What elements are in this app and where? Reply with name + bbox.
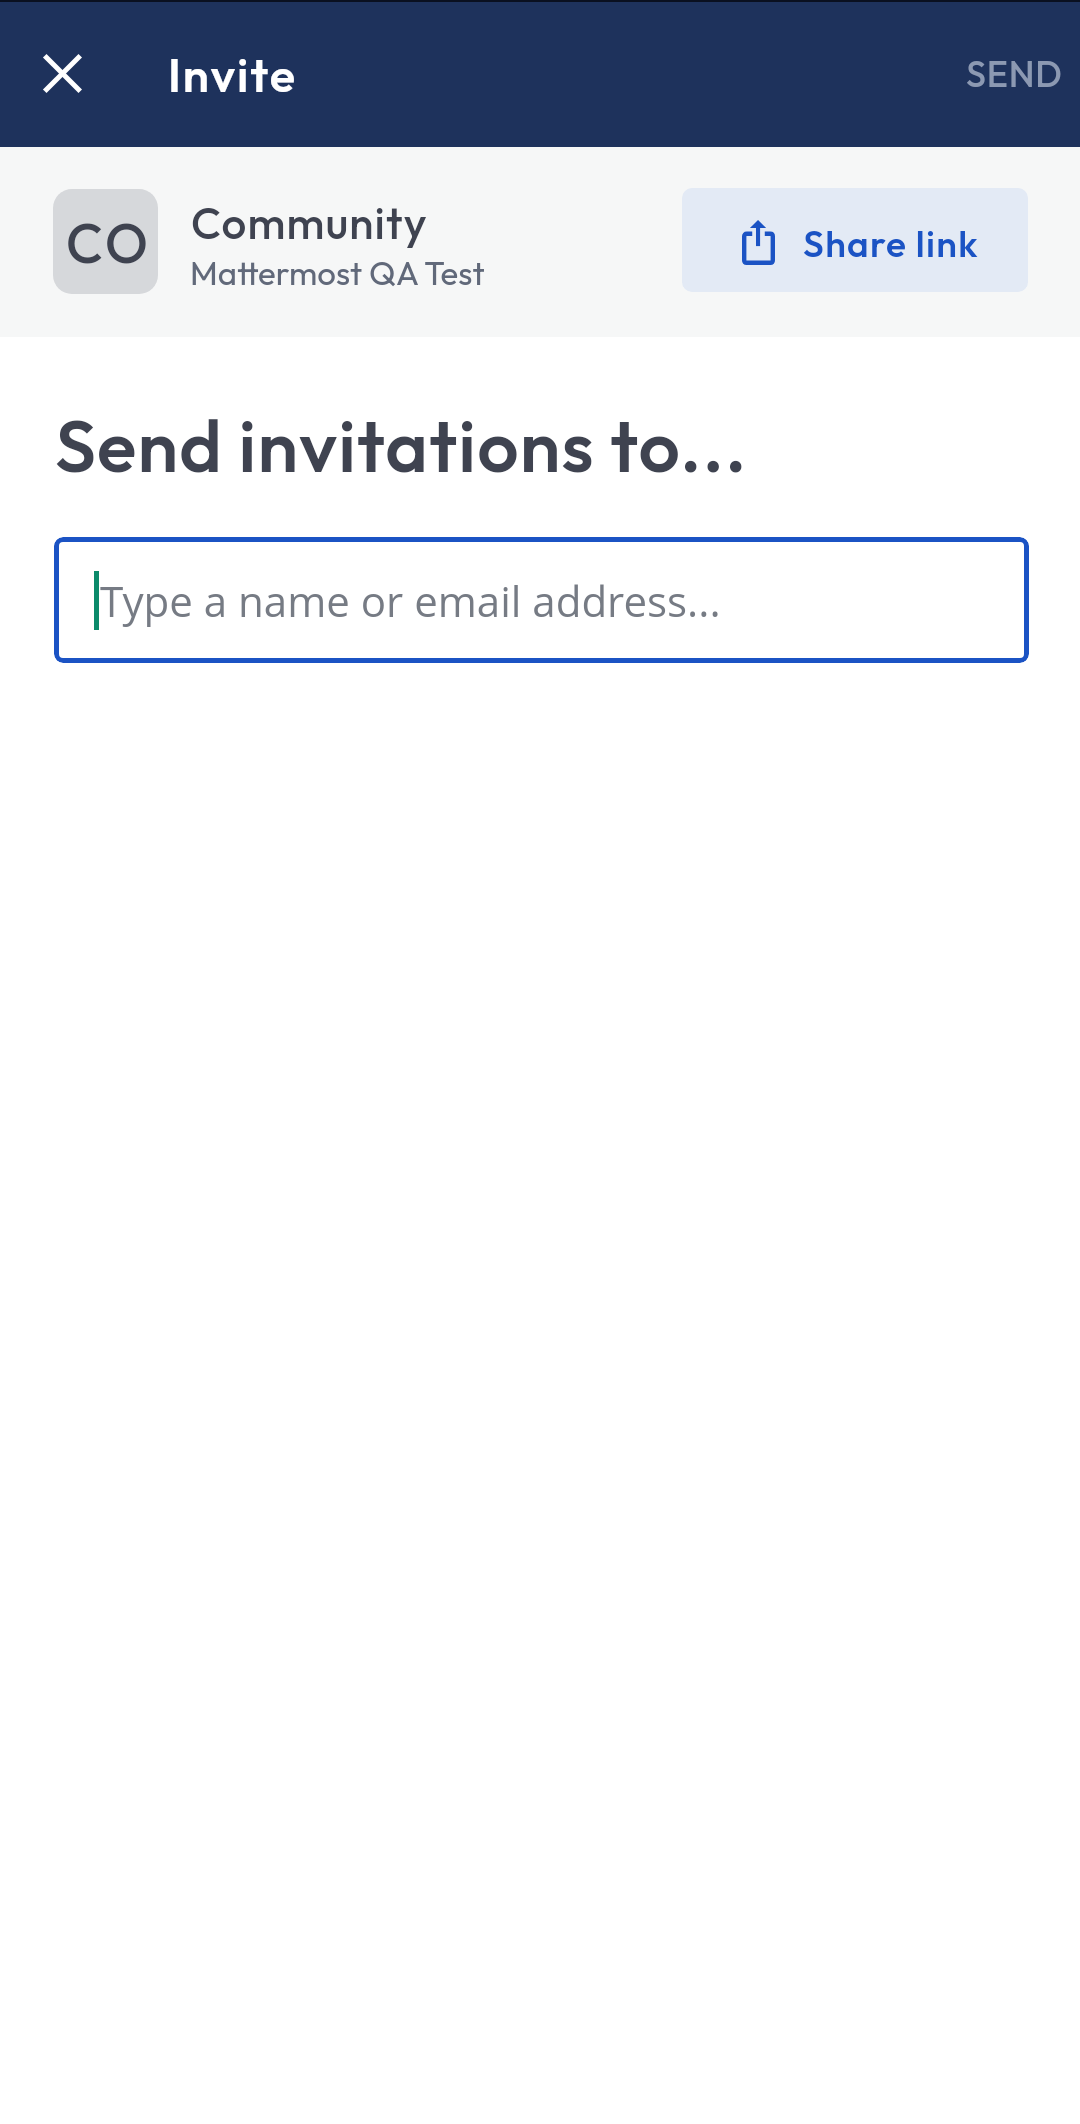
staticText: SEND [966,51,1063,96]
button[interactable]: Share link [682,188,1028,292]
button[interactable]: Close [18,29,106,117]
staticText: Invite [168,45,297,104]
staticText: Mattermost QA Test [190,252,485,294]
staticText: Type a name or email address... [100,572,721,629]
staticText: Community [191,195,428,250]
staticText: Share link [803,220,979,267]
staticText: Send invitations to... [55,399,748,491]
button[interactable]: Type a name or email address... [54,537,1029,663]
button[interactable]: SEND [947,25,1080,121]
staticText: CO [66,209,152,277]
